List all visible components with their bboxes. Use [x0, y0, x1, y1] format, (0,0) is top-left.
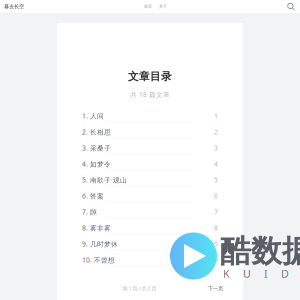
- button[interactable]: 7. 隙: [82, 204, 218, 220]
- staticText: 4. 如梦令: [82, 159, 111, 168]
- button[interactable]: 8. 雾非雾: [82, 220, 218, 236]
- staticText: 6. 答案: [82, 191, 104, 200]
- button[interactable]: 2. 长相思: [82, 124, 218, 140]
- staticText: 6: [214, 191, 218, 200]
- button[interactable]: 下一页: [208, 285, 223, 292]
- staticText: 3: [214, 143, 218, 152]
- staticText: 第 1 页 / 共 2 页: [122, 285, 156, 292]
- staticText: 1: [214, 111, 218, 120]
- button[interactable]: 4. 如梦令: [82, 156, 218, 172]
- staticText: 10: [210, 255, 218, 264]
- staticText: 下一页: [208, 285, 223, 292]
- button[interactable]: 5. 南歌子·观山: [82, 172, 218, 188]
- staticText: 2. 长相思: [82, 127, 111, 136]
- staticText: 10. 不曾想: [82, 255, 115, 264]
- staticText: 8: [214, 223, 218, 232]
- staticText: 酷数据: [220, 232, 300, 270]
- staticText: 3. 采桑子: [82, 143, 111, 152]
- staticText: 5. 南歌子·观山: [82, 175, 127, 184]
- staticText: 文章目录: [128, 70, 172, 83]
- staticText: 2: [214, 127, 218, 136]
- staticText: 9. 几时梦休: [82, 239, 118, 248]
- button[interactable]: 暮去长空: [0, 0, 24, 13]
- button[interactable]: 10. 不曾想: [82, 252, 218, 268]
- staticText: 共 18 篇文章: [130, 90, 170, 99]
- button[interactable]: 9. 几时梦休: [82, 236, 218, 252]
- staticText: 5: [214, 175, 218, 184]
- staticText: 7: [214, 207, 218, 216]
- staticText: 4: [214, 159, 218, 168]
- button[interactable]: 3. 采桑子: [82, 140, 218, 156]
- staticText: 暮去长空: [4, 3, 24, 10]
- button[interactable]: 1. 人间: [82, 108, 218, 124]
- staticText: KUIDC: [223, 266, 300, 281]
- staticText: 首页: [144, 4, 152, 9]
- button[interactable]: 6. 答案: [82, 188, 218, 204]
- staticText: 8. 雾非雾: [82, 223, 111, 232]
- staticText: 关于: [159, 4, 167, 9]
- staticText: 9: [214, 239, 218, 248]
- staticText: 7. 隙: [82, 207, 97, 216]
- button[interactable]: 关于: [159, 0, 167, 13]
- button[interactable]: 首页: [144, 0, 152, 13]
- button[interactable]: Search: [287, 0, 300, 13]
- staticText: 1. 人间: [82, 111, 104, 120]
